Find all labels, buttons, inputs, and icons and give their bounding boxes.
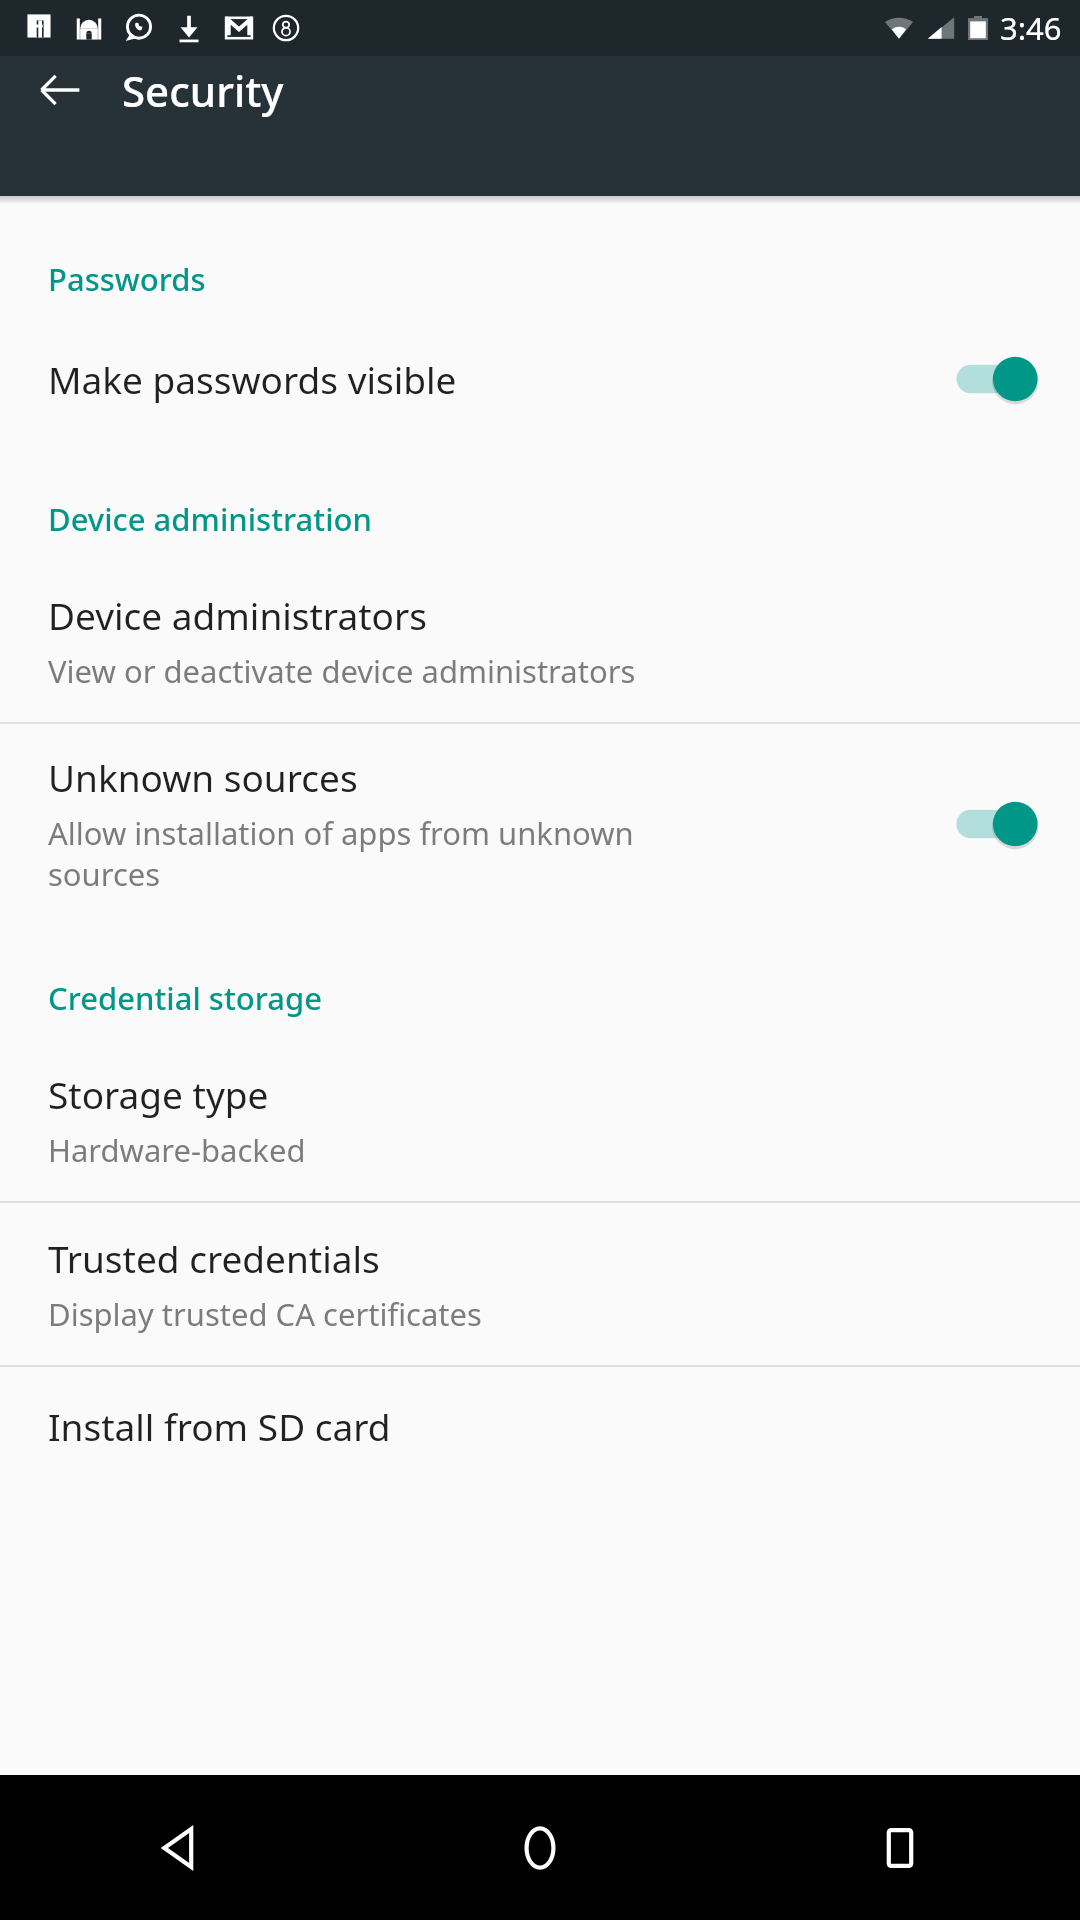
button[interactable]: Back <box>26 56 94 124</box>
staticText: Make passwords visible <box>48 354 457 404</box>
staticText: Credential storage <box>48 977 322 1019</box>
staticText: Passwords <box>48 258 206 300</box>
button[interactable]: Make passwords visible <box>0 320 1080 438</box>
staticText: View or deactivate device administrators <box>48 650 636 692</box>
staticText: Device administrators <box>48 590 427 640</box>
staticText: Security <box>122 62 284 119</box>
button[interactable]: Install from SD card <box>0 1367 1080 1485</box>
staticText: Display trusted CA certificates <box>48 1293 482 1335</box>
button[interactable]: Device administrators <box>0 560 1080 722</box>
button[interactable]: Trusted credentials <box>0 1203 1080 1365</box>
staticText: Unknown sources <box>48 752 358 802</box>
button[interactable]: Recents <box>720 1775 1080 1920</box>
staticText: Hardware-backed <box>48 1129 306 1171</box>
staticText: Allow installation of apps from unknown … <box>48 812 634 895</box>
button[interactable]: Toggle <box>944 348 1040 410</box>
button[interactable]: Back <box>0 1775 360 1920</box>
staticText: Storage type <box>48 1069 269 1119</box>
staticText: 3:46 <box>1000 7 1062 49</box>
button[interactable]: Storage type <box>0 1039 1080 1201</box>
button[interactable]: Toggle <box>944 793 1040 855</box>
button[interactable]: Home <box>360 1775 720 1920</box>
staticText: Trusted credentials <box>48 1233 380 1283</box>
staticText: Device administration <box>48 498 372 540</box>
staticText: Install from SD card <box>48 1401 391 1451</box>
button[interactable]: Unknown sources <box>0 724 1080 923</box>
